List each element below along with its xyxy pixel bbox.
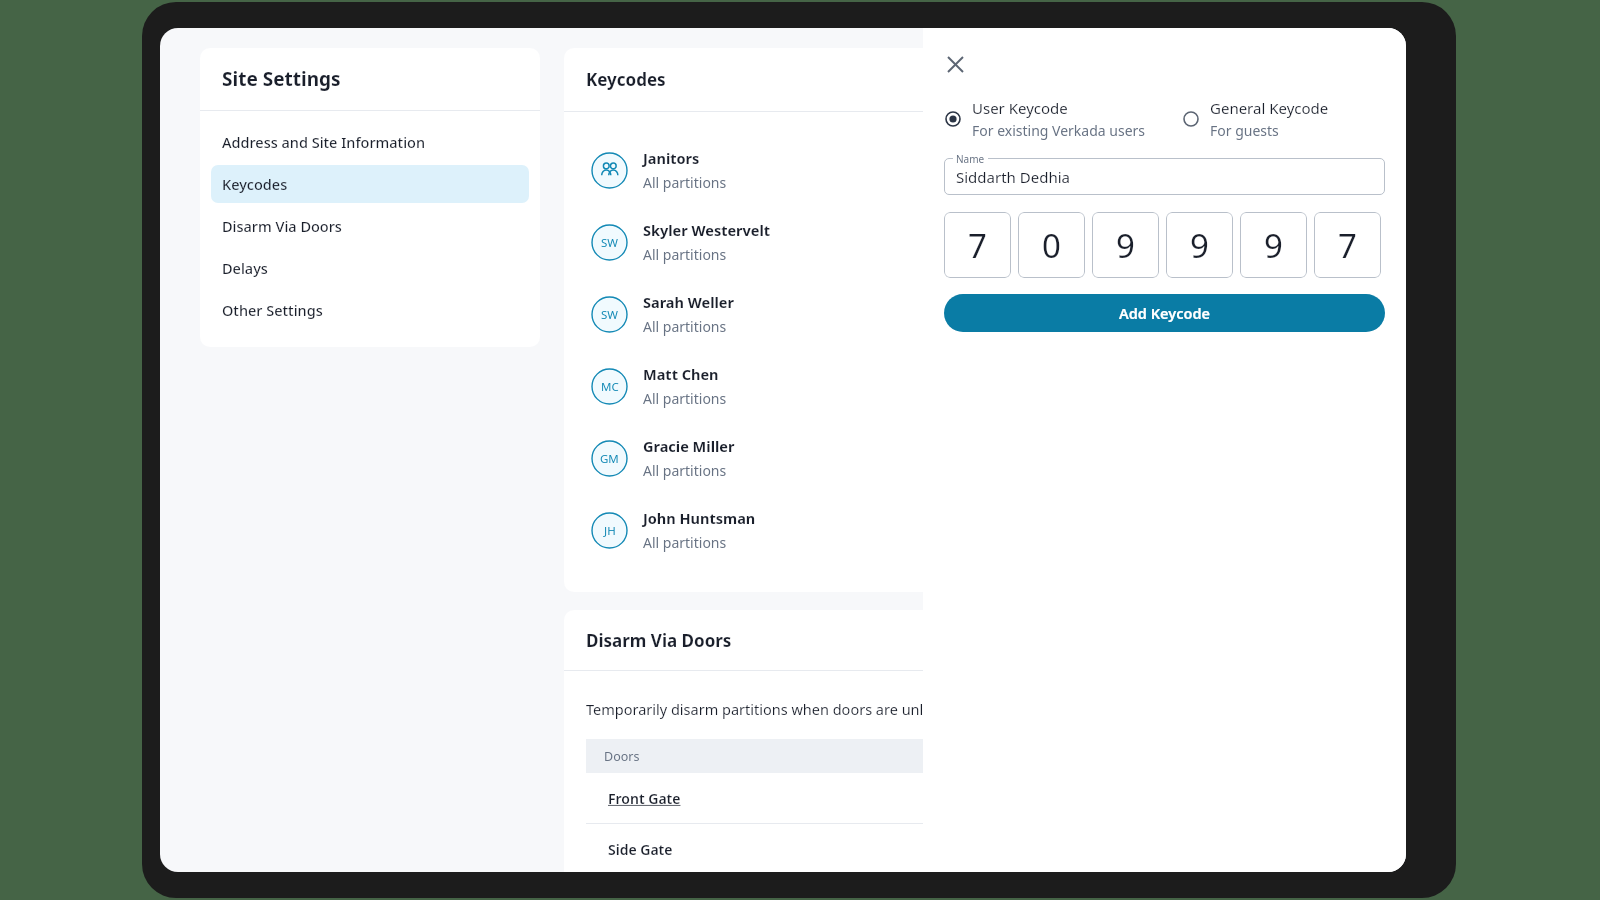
button[interactable]: Other Settings <box>211 291 529 329</box>
button[interactable]: Front Gate <box>608 789 681 808</box>
staticText: 9 <box>1116 223 1135 268</box>
staticText: All partitions <box>643 245 727 264</box>
staticText: General Keycode <box>1210 98 1329 118</box>
staticText: All partitions <box>643 173 727 192</box>
staticText: Keycodes <box>586 68 666 91</box>
staticText: Side Gate <box>608 840 673 859</box>
staticText: 7 <box>1338 223 1357 268</box>
staticText: User Keycode <box>972 98 1068 118</box>
button[interactable]: Delays <box>211 249 529 287</box>
staticText: Skyler Westervelt <box>643 220 771 240</box>
button[interactable]: SW <box>564 206 1164 278</box>
button[interactable]: User Keycode <box>943 98 1181 140</box>
staticText: JH <box>604 523 616 539</box>
button[interactable]: 7 <box>1314 212 1381 278</box>
staticText: Siddarth Dedhia <box>956 167 1070 187</box>
staticText: 0 <box>1042 223 1061 268</box>
button[interactable]: Keycodes <box>211 165 529 203</box>
button[interactable]: General Keycode <box>1181 98 1381 140</box>
button[interactable]: Add Keycode <box>944 294 1385 332</box>
staticText: Other Settings <box>222 300 323 320</box>
button[interactable]: JH <box>564 494 1164 566</box>
button[interactable]: Janitors <box>564 134 1164 206</box>
button[interactable]: 9 <box>1092 212 1159 278</box>
button[interactable]: Address and Site Information <box>211 123 529 161</box>
staticText: Sarah Weller <box>643 292 734 312</box>
staticText: Delays <box>222 258 268 278</box>
staticText: For existing Verkada users <box>972 121 1146 140</box>
staticText: SW <box>601 235 619 251</box>
staticText: All partitions <box>643 533 727 552</box>
staticText: Add Keycode <box>1119 303 1210 323</box>
staticText: Matt Chen <box>643 364 719 384</box>
staticText: All partitions <box>643 461 727 480</box>
button[interactable]: GM <box>564 422 1164 494</box>
button[interactable]: SW <box>564 278 1164 350</box>
staticText: Disarm Via Doors <box>222 216 342 236</box>
button[interactable]: 7 <box>944 212 1011 278</box>
staticText: SW <box>601 307 619 323</box>
staticText: MC <box>601 379 619 395</box>
button[interactable]: 9 <box>1166 212 1233 278</box>
staticText: Gracie Miller <box>643 436 735 456</box>
button[interactable]: Disarm Via Doors <box>211 207 529 245</box>
staticText: 7 <box>968 223 987 268</box>
staticText: Disarm Via Doors <box>586 629 732 652</box>
staticText: Janitors <box>643 148 700 168</box>
staticText: Front Gate <box>608 789 681 808</box>
staticText: Temporarily disarm partitions when doors… <box>586 699 968 719</box>
button[interactable]: MC <box>564 350 1164 422</box>
staticText: All partitions <box>643 389 727 408</box>
staticText: 9 <box>1190 223 1209 268</box>
staticText: Site Settings <box>222 66 341 92</box>
button[interactable]: Close <box>937 46 973 82</box>
staticText: Name <box>956 152 985 166</box>
staticText: For guests <box>1210 121 1279 140</box>
staticText: All partitions <box>643 317 727 336</box>
button[interactable]: 0 <box>1018 212 1085 278</box>
button[interactable]: 9 <box>1240 212 1307 278</box>
staticText: GM <box>600 451 619 467</box>
staticText: Doors <box>604 748 640 765</box>
staticText: 9 <box>1264 223 1283 268</box>
staticText: Address and Site Information <box>222 132 426 152</box>
staticText: John Huntsman <box>643 508 756 528</box>
staticText: Keycodes <box>222 174 288 194</box>
